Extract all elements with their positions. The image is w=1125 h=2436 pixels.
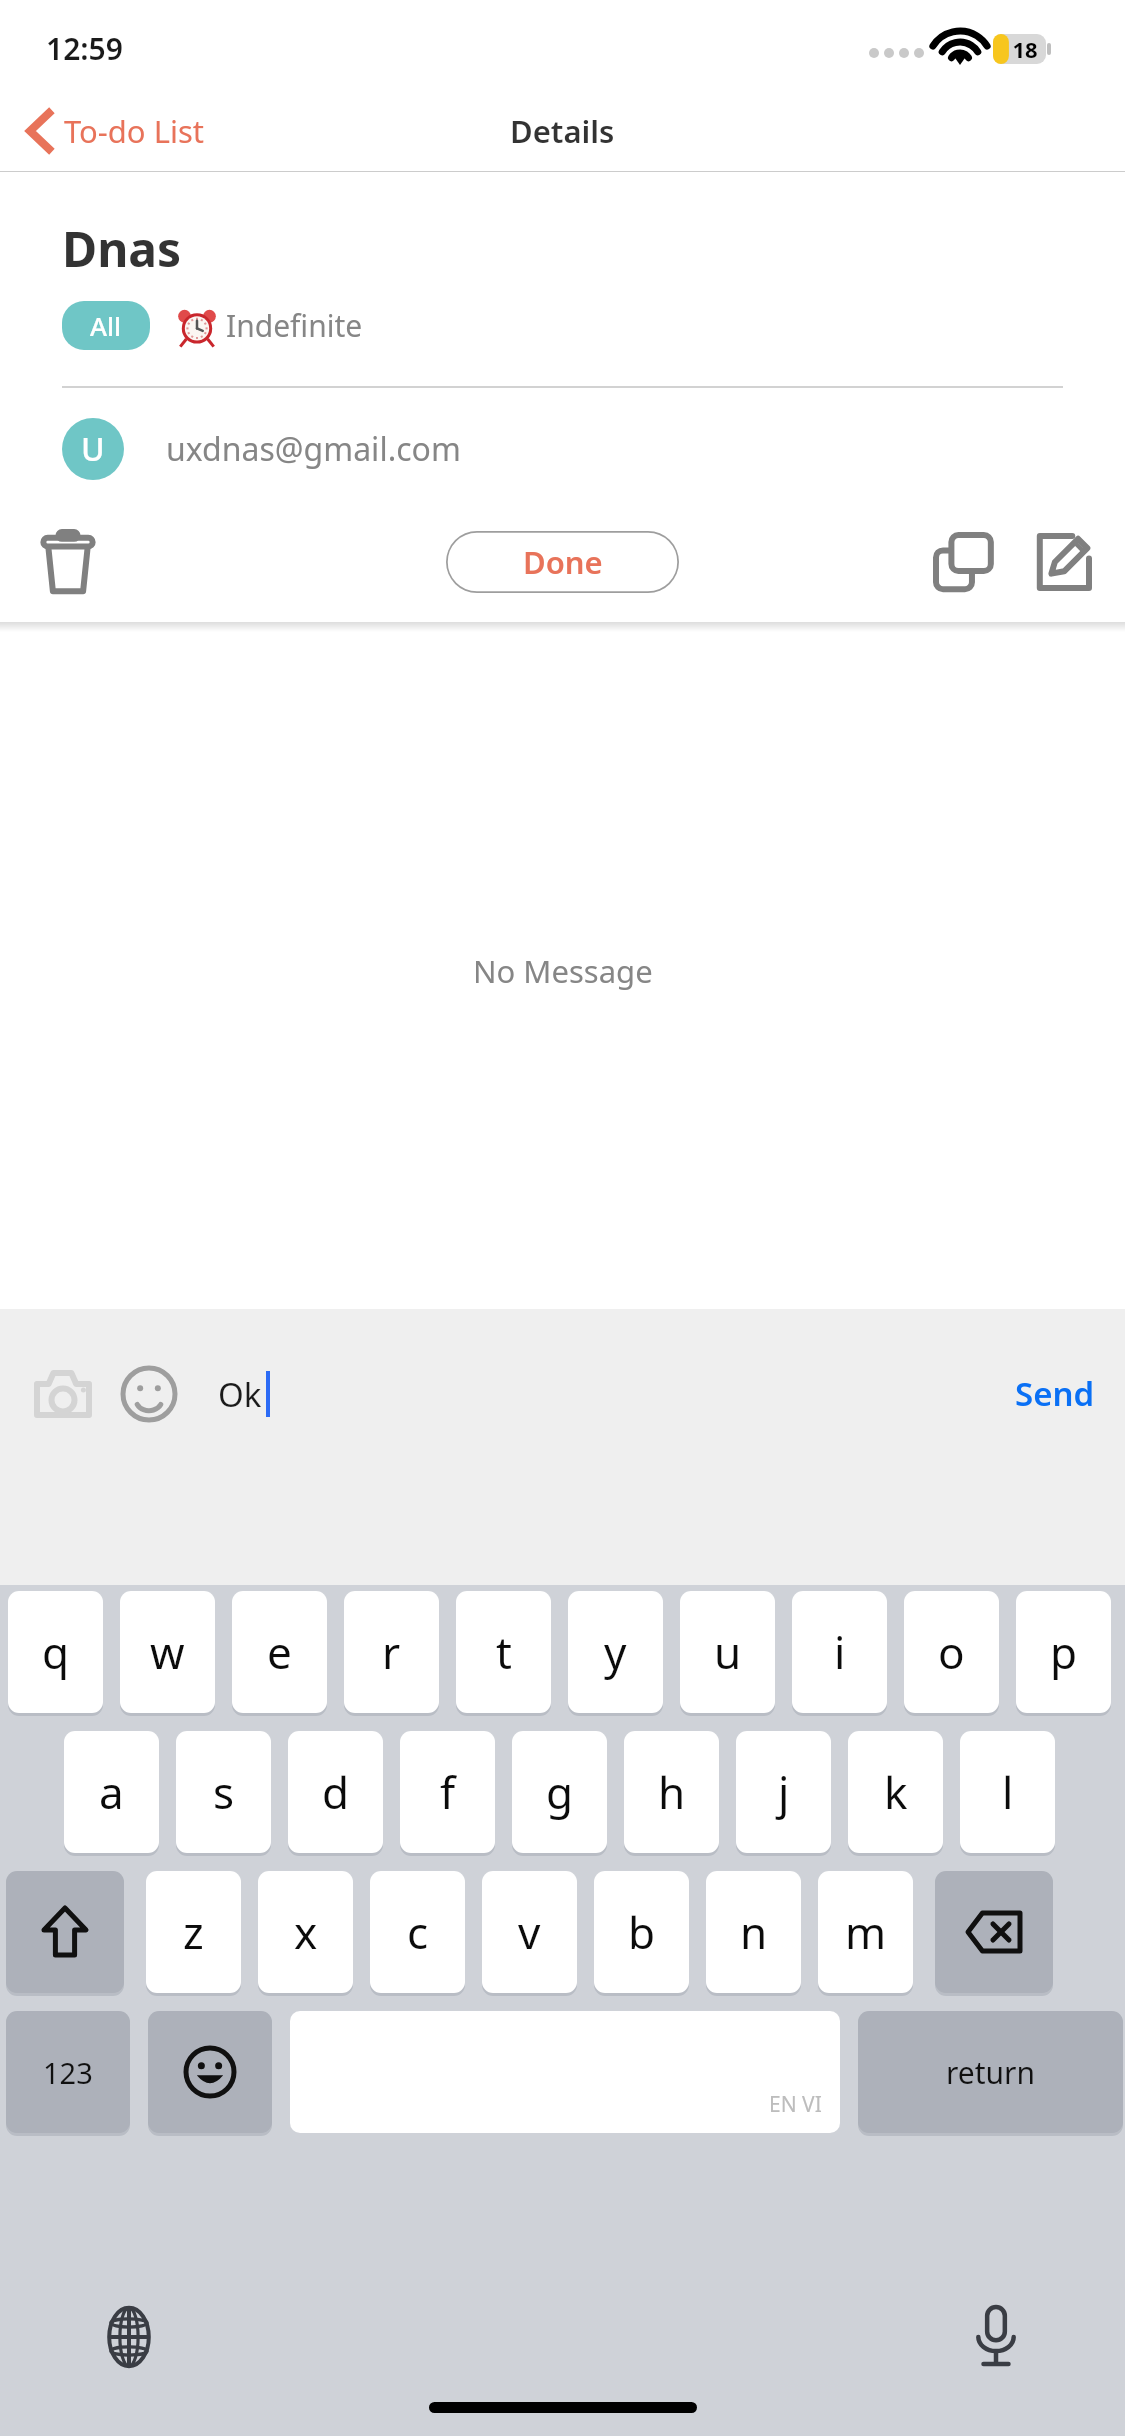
staticText: q [42, 1622, 70, 1682]
staticText: Ok [218, 1372, 262, 1417]
staticText: d [322, 1762, 350, 1822]
button[interactable]: To-do List [16, 101, 214, 161]
button[interactable]: y [568, 1591, 663, 1713]
staticText: j [778, 1762, 790, 1822]
button[interactable]: v [482, 1871, 577, 1993]
button[interactable]: Emoji [118, 1363, 180, 1425]
staticText: 18 [1005, 34, 1045, 64]
button[interactable]: All [62, 301, 150, 350]
staticText: Indefinite [226, 305, 363, 346]
button[interactable]: i [792, 1591, 887, 1713]
button[interactable]: p [1016, 1591, 1111, 1713]
button[interactable]: Send [987, 1357, 1123, 1430]
button[interactable]: s [176, 1731, 271, 1853]
staticText: Dnas [62, 216, 182, 281]
staticText: p [1050, 1622, 1078, 1682]
button[interactable]: U [62, 418, 461, 480]
button[interactable]: 123 [6, 2011, 130, 2133]
button[interactable]: x [258, 1871, 353, 1993]
button[interactable]: e [232, 1591, 327, 1713]
button[interactable]: Change keyboard language [96, 2304, 162, 2370]
staticText: u [714, 1622, 742, 1682]
staticText: y [604, 1622, 627, 1682]
button[interactable]: b [594, 1871, 689, 1993]
button[interactable]: j [736, 1731, 831, 1853]
staticText: k [884, 1762, 908, 1822]
button[interactable]: f [400, 1731, 495, 1853]
button[interactable]: a [64, 1731, 159, 1853]
staticText: Send [1015, 1371, 1095, 1416]
button[interactable]: h [624, 1731, 719, 1853]
staticText: x [294, 1902, 318, 1962]
button[interactable]: c [370, 1871, 465, 1993]
staticText: EN VI [769, 2090, 822, 2119]
button[interactable]: EN VI [290, 2011, 840, 2133]
staticText: To-do List [64, 110, 204, 152]
button[interactable]: return [858, 2011, 1123, 2133]
staticText: 123 [43, 2053, 93, 2092]
button[interactable]: g [512, 1731, 607, 1853]
staticText: s [213, 1762, 235, 1822]
staticText: b [628, 1902, 656, 1962]
button[interactable]: Done [446, 531, 679, 593]
staticText: All [90, 308, 122, 343]
button[interactable]: m [818, 1871, 913, 1993]
staticText: t [496, 1622, 512, 1682]
button[interactable]: Voice input [963, 2304, 1029, 2370]
staticText: i [834, 1622, 846, 1682]
button[interactable]: d [288, 1731, 383, 1853]
staticText: a [99, 1762, 124, 1822]
button[interactable]: r [344, 1591, 439, 1713]
button[interactable]: k [848, 1731, 943, 1853]
staticText: f [440, 1762, 456, 1822]
staticText: c [407, 1902, 429, 1962]
staticText: Done [523, 541, 603, 583]
button[interactable]: n [706, 1871, 801, 1993]
button[interactable]: w [120, 1591, 215, 1713]
staticText: z [183, 1902, 204, 1962]
button[interactable]: Camera [30, 1361, 96, 1427]
staticText: e [267, 1622, 292, 1682]
staticText: l [1002, 1762, 1014, 1822]
button[interactable]: z [146, 1871, 241, 1993]
button[interactable] [6, 1871, 124, 1993]
button[interactable]: l [960, 1731, 1055, 1853]
button[interactable]: Duplicate [923, 522, 1003, 602]
staticText: m [845, 1902, 887, 1962]
button[interactable]: o [904, 1591, 999, 1713]
staticText: h [658, 1762, 686, 1822]
button[interactable] [935, 1871, 1053, 1993]
button[interactable]: u [680, 1591, 775, 1713]
staticText: No Message [473, 950, 653, 992]
button[interactable]: q [8, 1591, 103, 1713]
staticText: uxdnas@gmail.com [166, 427, 461, 471]
staticText: U [81, 427, 105, 471]
staticText: w [150, 1622, 185, 1682]
button[interactable] [148, 2011, 272, 2133]
staticText: Details [510, 110, 615, 152]
staticText: 12:59 [46, 28, 123, 69]
button[interactable]: t [456, 1591, 551, 1713]
staticText: return [946, 2052, 1036, 2093]
staticText: r [382, 1622, 401, 1682]
button[interactable]: Edit [1023, 522, 1103, 602]
staticText: n [740, 1902, 768, 1962]
staticText: o [938, 1622, 965, 1682]
staticText: g [546, 1762, 574, 1822]
button[interactable]: Delete [30, 524, 106, 600]
staticText: v [518, 1902, 541, 1962]
